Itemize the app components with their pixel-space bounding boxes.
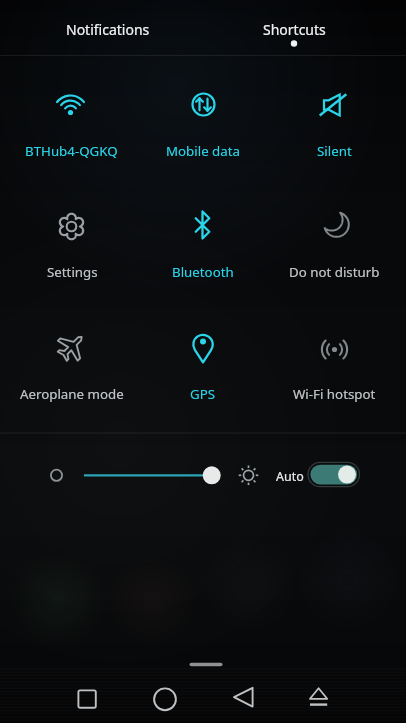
button[interactable] — [127, 672, 203, 723]
button[interactable] — [0, 180, 135, 305]
staticText: BTHub4-QGKQ — [25, 142, 118, 160]
staticText: Mobile data — [166, 142, 240, 160]
button[interactable] — [203, 0, 406, 56]
button[interactable] — [268, 455, 368, 495]
staticText: Do not disturb — [289, 263, 380, 281]
staticText: Notifications — [66, 20, 150, 39]
staticText: Shortcuts — [263, 20, 326, 39]
staticText: Settings — [47, 263, 98, 281]
button[interactable] — [271, 56, 406, 180]
button[interactable] — [205, 672, 281, 723]
button[interactable] — [271, 305, 406, 430]
button[interactable] — [0, 305, 135, 430]
button[interactable] — [135, 180, 270, 305]
button[interactable] — [168, 653, 238, 673]
staticText: GPS — [190, 385, 216, 403]
button[interactable] — [0, 56, 135, 180]
button[interactable] — [0, 0, 203, 56]
button[interactable] — [271, 180, 406, 305]
button[interactable] — [236, 455, 262, 495]
staticText: Silent — [317, 142, 352, 160]
button[interactable] — [281, 672, 357, 723]
staticText: Auto — [276, 468, 304, 485]
button[interactable] — [135, 305, 270, 430]
button[interactable] — [135, 56, 270, 180]
staticText: Bluetooth — [172, 263, 234, 281]
staticText: Wi-Fi hotspot — [293, 385, 376, 403]
button[interactable] — [49, 672, 125, 723]
button[interactable] — [40, 453, 235, 497]
staticText: Aeroplane mode — [20, 385, 124, 403]
